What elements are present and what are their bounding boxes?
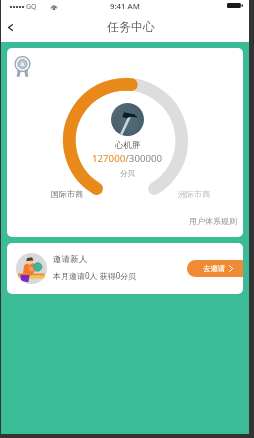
staticText: 去邀请 xyxy=(203,264,226,273)
staticText: 国际市商 xyxy=(51,189,83,199)
staticText: 9:41 AM xyxy=(110,1,140,12)
button[interactable]: Back xyxy=(1,19,20,38)
staticText: 127000/300000 xyxy=(92,152,163,165)
staticText: 邀请新人 xyxy=(53,254,88,265)
staticText: 本月邀请0人 获得0分贝 xyxy=(53,270,137,281)
staticText: 用户体系规则 xyxy=(189,216,237,226)
button[interactable]: 去邀请 xyxy=(187,260,243,277)
staticText: 心机胖 xyxy=(115,140,141,151)
button[interactable]: 用户体系规则 xyxy=(189,216,243,237)
staticText: GQ xyxy=(26,2,37,12)
staticText: 分贝 xyxy=(120,169,135,178)
staticText: 任务中心 xyxy=(107,19,155,34)
staticText: 洲际市商 xyxy=(178,189,210,199)
